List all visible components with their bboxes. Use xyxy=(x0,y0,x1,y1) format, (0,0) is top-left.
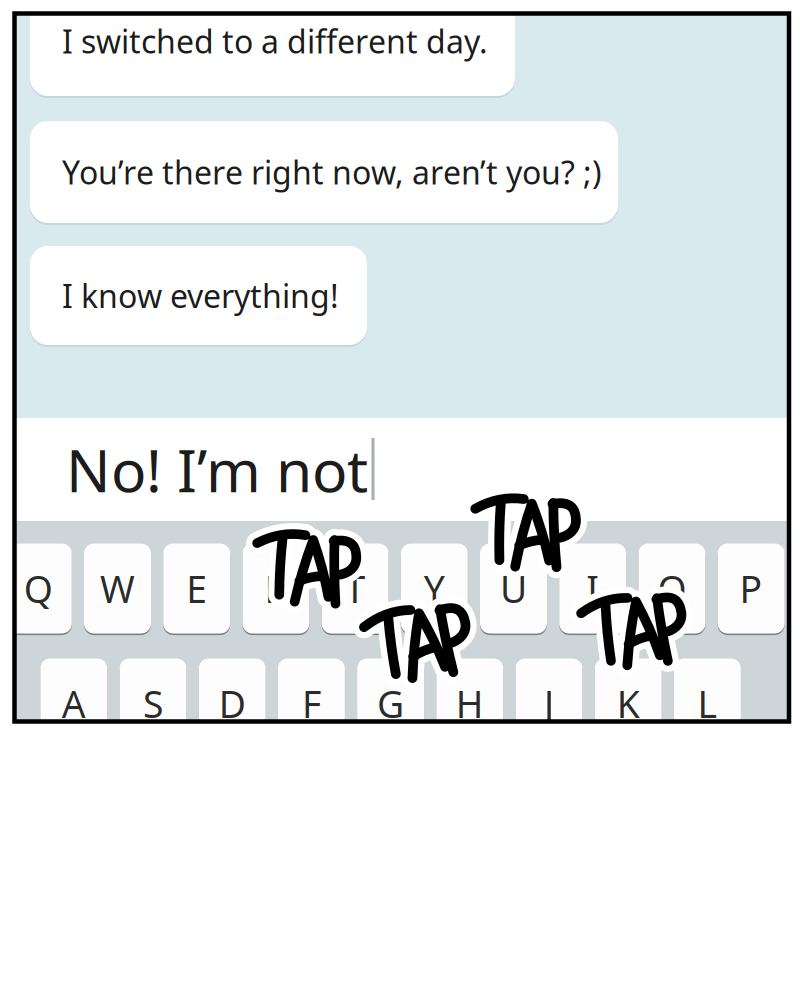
staticText: You’re there right now, aren’t you? ;) xyxy=(62,151,602,193)
button[interactable]: D xyxy=(199,658,266,748)
staticText: No! I’m not xyxy=(66,430,368,508)
staticText: S xyxy=(143,679,163,728)
button[interactable]: L xyxy=(674,658,741,748)
staticText: U xyxy=(500,564,527,613)
button[interactable]: R xyxy=(242,543,309,633)
button[interactable]: F xyxy=(278,658,345,748)
staticText: J xyxy=(544,679,554,728)
staticText: Y xyxy=(424,564,445,613)
button[interactable]: Q xyxy=(5,543,72,633)
staticText: G xyxy=(377,679,404,728)
staticText: Q xyxy=(24,564,53,613)
staticText: L xyxy=(697,679,717,728)
staticText: I switched to a different day. xyxy=(62,20,488,62)
staticText: R xyxy=(264,564,287,613)
staticText: A xyxy=(62,679,86,728)
button[interactable]: P xyxy=(718,543,785,633)
staticText: W xyxy=(100,564,135,613)
button[interactable]: H xyxy=(436,658,503,748)
staticText: T xyxy=(345,564,366,613)
button[interactable]: S xyxy=(119,658,186,748)
button[interactable]: J xyxy=(515,658,582,748)
button[interactable]: A xyxy=(40,658,107,748)
button[interactable]: T xyxy=(322,543,389,633)
button[interactable]: G xyxy=(357,658,424,748)
staticText: I know everything! xyxy=(62,274,339,317)
staticText: P xyxy=(740,564,763,613)
button[interactable]: U xyxy=(480,543,547,633)
button[interactable]: E xyxy=(163,543,230,633)
button[interactable]: No! I’m not xyxy=(14,418,789,521)
button[interactable]: O xyxy=(638,543,705,633)
button[interactable]: K xyxy=(595,658,662,748)
button[interactable]: W xyxy=(84,543,151,633)
staticText: H xyxy=(456,679,484,728)
staticText: E xyxy=(186,564,207,613)
staticText: O xyxy=(657,564,686,613)
button[interactable]: I xyxy=(559,543,626,633)
button[interactable]: Y xyxy=(401,543,468,633)
staticText: I xyxy=(586,564,599,613)
staticText: K xyxy=(617,679,640,728)
staticText: F xyxy=(302,679,321,728)
staticText: D xyxy=(219,679,246,728)
